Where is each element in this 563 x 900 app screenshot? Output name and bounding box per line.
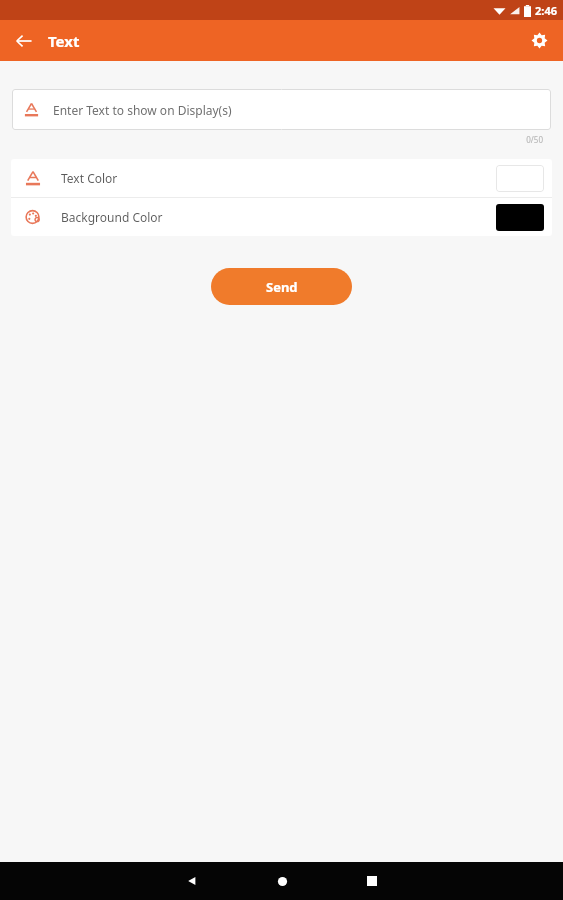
staticText: Text (48, 31, 80, 51)
button[interactable]: Background Color swatch (496, 204, 544, 231)
button[interactable]: Recent apps (342, 862, 402, 900)
staticText: 2:46 (535, 3, 557, 18)
button[interactable]: Back (0, 20, 48, 61)
staticText: 0/50 (526, 134, 543, 145)
staticText: Background Color (61, 209, 163, 225)
staticText: Text Color (61, 170, 118, 186)
button[interactable]: Text Color (11, 159, 552, 197)
button[interactable]: Enter Text to show on Display(s) (12, 89, 551, 130)
button[interactable]: Send (211, 268, 352, 305)
button[interactable]: Background Color (11, 198, 552, 236)
staticText: Send (266, 278, 298, 296)
button[interactable]: Text Color swatch (496, 165, 544, 192)
button[interactable]: Back (162, 862, 222, 900)
button[interactable]: Settings (515, 20, 563, 61)
staticText: Enter Text to show on Display(s) (53, 102, 232, 118)
button[interactable]: Home (252, 862, 312, 900)
